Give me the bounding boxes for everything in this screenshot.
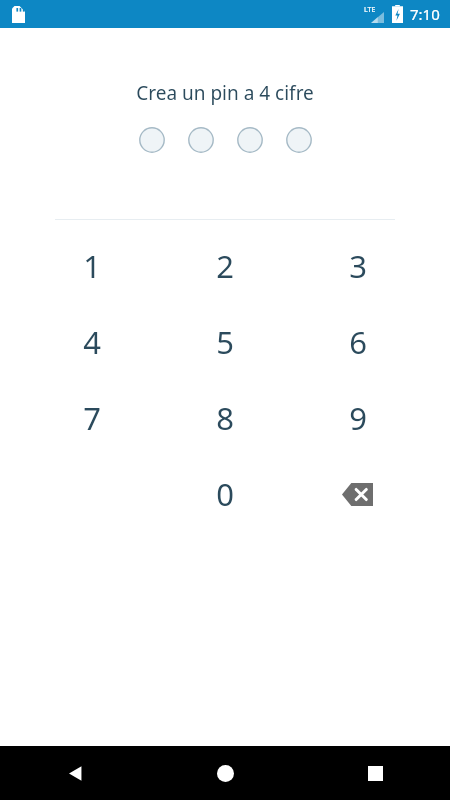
staticText: 5: [216, 321, 234, 363]
staticText: 8: [216, 397, 234, 439]
staticText: 7:10: [410, 4, 440, 24]
button[interactable]: 7: [26, 380, 158, 456]
button[interactable]: 4: [26, 304, 158, 380]
button[interactable]: Back: [0, 746, 150, 800]
button[interactable]: 1: [26, 228, 158, 304]
staticText: 6: [349, 321, 367, 363]
staticText: Crea un pin a 4 cifre: [136, 80, 314, 106]
button[interactable]: 9: [291, 380, 424, 456]
button[interactable]: 6: [291, 304, 424, 380]
button[interactable]: 2: [158, 228, 291, 304]
button[interactable]: Home: [150, 746, 300, 800]
staticText: 9: [349, 397, 367, 439]
staticText: LTE: [364, 5, 376, 15]
staticText: 0: [216, 473, 234, 515]
staticText: 1: [83, 245, 101, 287]
staticText: 4: [83, 321, 101, 363]
staticText: 3: [349, 245, 367, 287]
button[interactable]: 3: [291, 228, 424, 304]
button[interactable]: Backspace: [291, 456, 424, 532]
staticText: 7: [83, 397, 101, 439]
button[interactable]: 8: [158, 380, 291, 456]
button[interactable]: Recent apps: [300, 746, 450, 800]
button[interactable]: 0: [158, 456, 291, 532]
button[interactable]: 5: [158, 304, 291, 380]
staticText: 2: [216, 245, 234, 287]
